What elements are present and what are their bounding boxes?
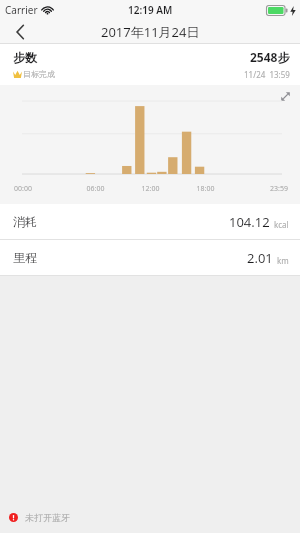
staticText: km: [277, 255, 289, 266]
button[interactable]: Back: [0, 20, 40, 44]
staticText: 步数: [13, 50, 37, 65]
staticText: 12:00: [123, 184, 178, 194]
staticText: 里程: [13, 250, 37, 265]
staticText: 23:59: [233, 184, 288, 194]
staticText: 消耗: [13, 214, 37, 229]
staticText: 00:00: [14, 184, 68, 194]
staticText: 目标完成: [23, 69, 55, 79]
staticText: 2548步: [250, 49, 290, 65]
staticText: 未打开蓝牙: [25, 512, 70, 523]
button[interactable]: Expand chart: [272, 86, 298, 106]
staticText: 2017年11月24日: [101, 23, 200, 41]
staticText: 2.01: [247, 249, 273, 267]
staticText: Carrier: [5, 3, 38, 17]
staticText: 06:00: [68, 184, 123, 194]
staticText: 12:19 AM: [128, 3, 173, 17]
staticText: 104.12: [229, 213, 270, 231]
staticText: 18:00: [178, 184, 233, 194]
button[interactable]: 消耗: [0, 204, 300, 239]
staticText: kcal: [274, 219, 289, 230]
button[interactable]: 步数: [0, 44, 300, 85]
staticText: 11/24 13:59: [244, 69, 290, 80]
button[interactable]: 里程: [0, 240, 300, 275]
